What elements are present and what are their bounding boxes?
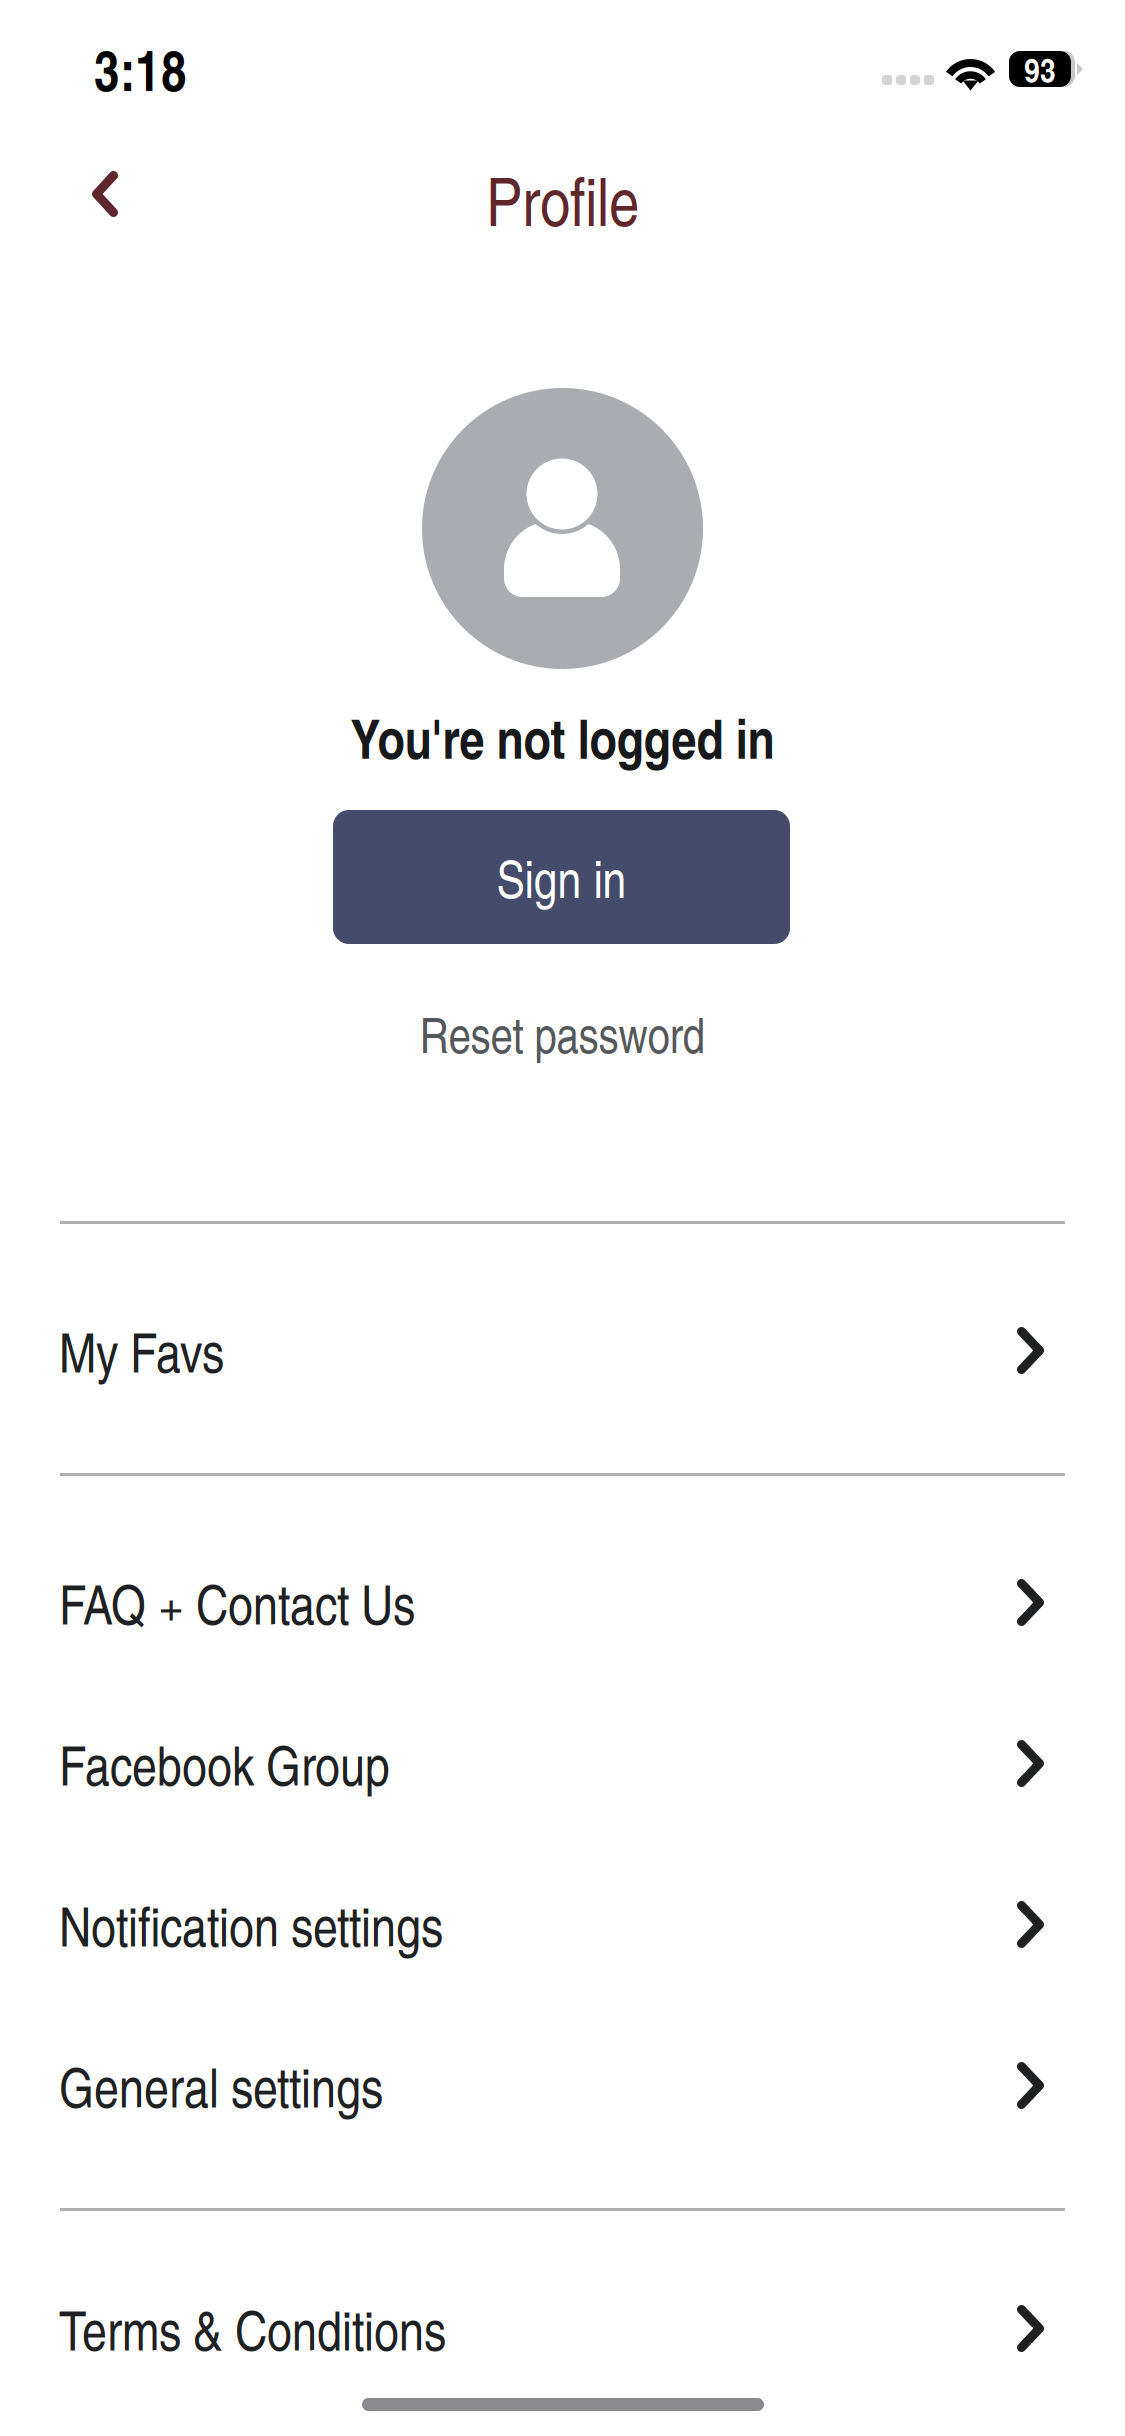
staticText: General settings: [59, 2048, 383, 2123]
button[interactable]: FAQ + Contact Us: [0, 1522, 1125, 1683]
staticText: Profile: [486, 153, 639, 245]
staticText: My Favs: [59, 1313, 224, 1388]
button[interactable]: General settings: [0, 2005, 1125, 2166]
button[interactable]: Notification settings: [0, 1844, 1125, 2005]
button[interactable]: Facebook Group: [0, 1683, 1125, 1844]
staticText: FAQ + Contact Us: [59, 1565, 415, 1640]
button[interactable]: Terms & Conditions: [0, 2248, 1125, 2409]
staticText: Notification settings: [59, 1887, 443, 1962]
button[interactable]: My Favs: [0, 1270, 1125, 1431]
button[interactable]: Back: [0, 138, 210, 250]
staticText: Terms & Conditions: [59, 2291, 446, 2366]
staticText: 93: [1024, 44, 1056, 93]
staticText: 3:18: [94, 29, 187, 108]
staticText: Sign in: [496, 841, 626, 913]
button[interactable]: Sign in: [333, 810, 790, 944]
button[interactable]: Reset password: [392, 993, 732, 1073]
staticText: Facebook Group: [59, 1726, 390, 1801]
staticText: Reset password: [419, 999, 704, 1067]
staticText: You're not logged in: [350, 698, 774, 776]
